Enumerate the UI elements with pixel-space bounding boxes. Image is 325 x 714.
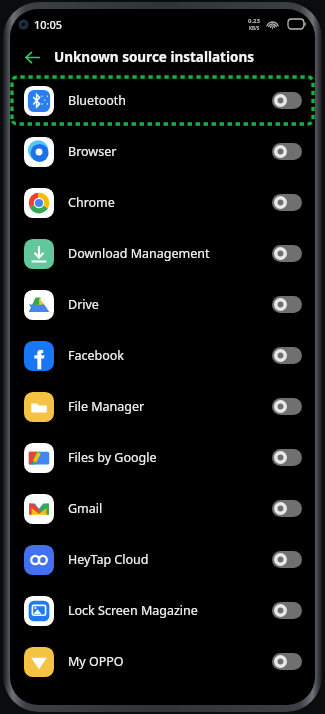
button[interactable]: Toggle Browser xyxy=(272,143,302,160)
button[interactable]: Gmail xyxy=(10,483,315,534)
button[interactable]: Facebook xyxy=(10,330,315,381)
button[interactable]: File Manager xyxy=(10,381,315,432)
button[interactable]: Bluetooth xyxy=(10,75,315,126)
staticText: Chrome xyxy=(68,194,266,211)
staticText: 10:05 xyxy=(34,17,63,32)
staticText: Download Management xyxy=(68,245,266,262)
button[interactable]: Toggle Bluetooth xyxy=(272,92,302,109)
button[interactable]: Drive xyxy=(10,279,315,330)
staticText: Drive xyxy=(68,296,266,313)
button[interactable]: Toggle HeyTap Cloud xyxy=(272,551,302,568)
button[interactable]: Toggle Files by Google xyxy=(272,449,302,466)
staticText: Bluetooth xyxy=(68,92,266,109)
staticText: Browser xyxy=(68,143,266,160)
button[interactable]: Files by Google xyxy=(10,432,315,483)
staticText: 0.23 xyxy=(248,17,260,25)
button[interactable]: Toggle File Manager xyxy=(272,398,302,415)
button[interactable]: Toggle Gmail xyxy=(272,500,302,517)
staticText: Unknown source installations xyxy=(54,48,254,66)
button[interactable]: Toggle Lock Screen Magazine xyxy=(272,602,302,619)
button[interactable]: Toggle Drive xyxy=(272,296,302,313)
staticText: Gmail xyxy=(68,500,266,517)
staticText: KB/S xyxy=(249,25,260,31)
button[interactable]: Back xyxy=(17,42,47,72)
button[interactable]: Toggle Facebook xyxy=(272,347,302,364)
staticText: Facebook xyxy=(68,347,266,364)
button[interactable]: Toggle Download Management xyxy=(272,245,302,262)
button[interactable]: Toggle My OPPO xyxy=(272,653,302,670)
staticText: Files by Google xyxy=(68,449,266,466)
button[interactable]: Lock Screen Magazine xyxy=(10,585,315,636)
staticText: File Manager xyxy=(68,398,266,415)
button[interactable]: HeyTap Cloud xyxy=(10,534,315,585)
staticText: My OPPO xyxy=(68,653,266,670)
button[interactable]: Browser xyxy=(10,126,315,177)
button[interactable]: Toggle Chrome xyxy=(272,194,302,211)
staticText: Lock Screen Magazine xyxy=(68,602,266,619)
button[interactable]: Chrome xyxy=(10,177,315,228)
staticText: HeyTap Cloud xyxy=(68,551,266,568)
button[interactable]: My OPPO xyxy=(10,636,315,687)
button[interactable]: Download Management xyxy=(10,228,315,279)
